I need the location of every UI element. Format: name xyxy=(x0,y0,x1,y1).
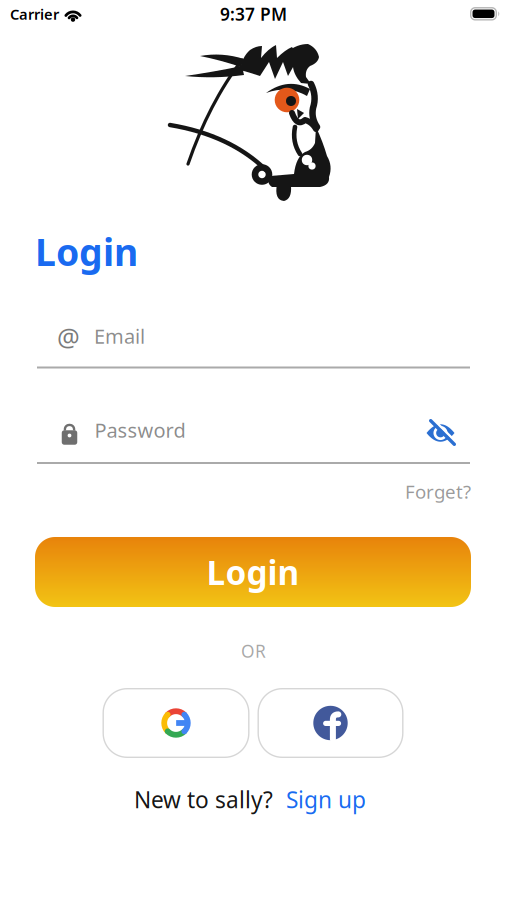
staticText: Password xyxy=(94,417,185,443)
staticText: Login xyxy=(35,227,138,276)
staticText: Carrier xyxy=(10,4,59,24)
staticText: OR xyxy=(241,639,266,662)
staticText: Email xyxy=(94,323,145,349)
staticText: Sign up xyxy=(286,784,366,814)
staticText: @ xyxy=(57,320,80,354)
button[interactable]: Sign in with Google xyxy=(102,688,249,758)
button[interactable]: Show password xyxy=(420,412,460,452)
button[interactable]: Sign in with Facebook xyxy=(257,688,403,758)
staticText: Forget? xyxy=(405,479,471,504)
button[interactable]: Login xyxy=(35,537,471,607)
staticText: Login xyxy=(206,550,299,594)
staticText: New to sally? xyxy=(134,784,273,814)
staticText: 9:37 PM xyxy=(220,2,287,25)
button[interactable]: Forget? xyxy=(405,479,471,504)
button[interactable]: Sign up xyxy=(286,784,366,814)
